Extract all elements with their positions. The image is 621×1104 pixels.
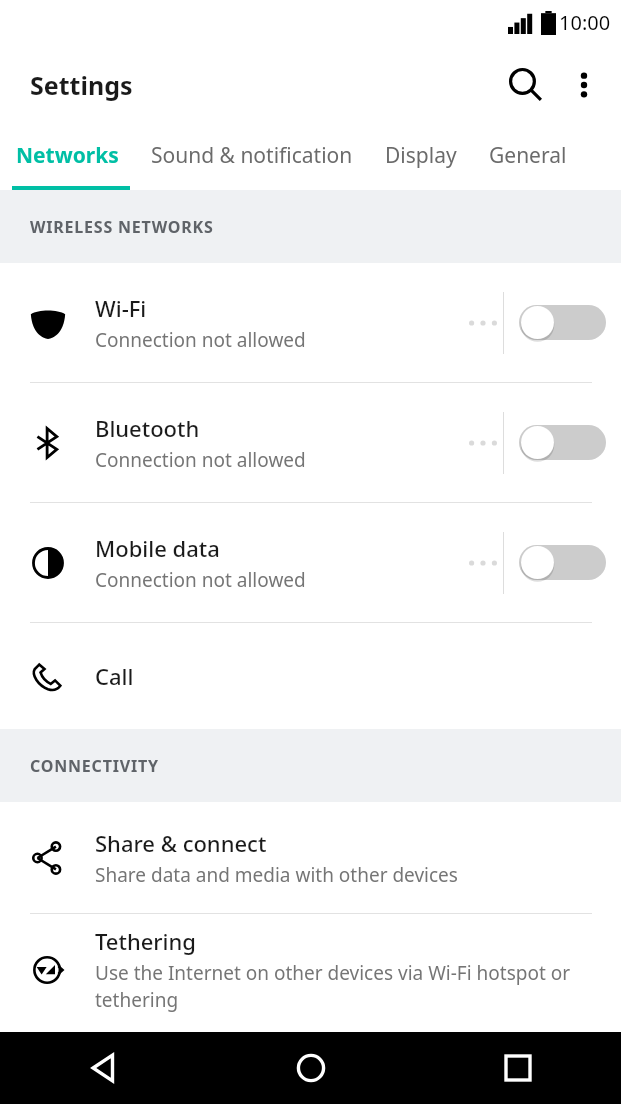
button[interactable]: Tethering <box>0 914 621 1025</box>
button[interactable]: Bluetooth toggle <box>504 383 621 502</box>
button[interactable]: Sound & notification <box>147 135 357 176</box>
staticText: Share data and media with other devices <box>95 862 458 888</box>
button[interactable]: Back <box>0 1032 207 1104</box>
button[interactable]: Wi-Fi <box>0 263 621 382</box>
staticText: Settings <box>30 68 133 102</box>
staticText: Share & connect <box>95 828 267 858</box>
button[interactable]: Call <box>0 623 621 729</box>
staticText: 10:00 <box>559 9 611 36</box>
button[interactable]: Mobile data toggle <box>504 503 621 622</box>
staticText: WIRELESS NETWORKS <box>30 216 214 238</box>
staticText: Mobile data <box>95 533 220 563</box>
button[interactable]: Share & connect <box>0 802 621 913</box>
staticText: Bluetooth <box>95 413 200 443</box>
staticText: Wi-Fi <box>95 293 147 323</box>
staticText: General <box>489 141 567 170</box>
staticText: Use the Internet on other devices via Wi… <box>95 960 601 1013</box>
staticText: Sound & notification <box>151 141 353 170</box>
button[interactable]: Search <box>495 55 555 115</box>
button[interactable]: More options <box>555 56 613 114</box>
staticText: Connection not allowed <box>95 327 306 353</box>
button[interactable]: Wi-Fi toggle <box>504 263 621 382</box>
staticText: Networks <box>16 141 119 170</box>
staticText: Tethering <box>95 926 196 956</box>
button[interactable]: Home <box>207 1032 414 1104</box>
staticText: Display <box>385 141 457 170</box>
button[interactable]: Bluetooth <box>0 383 621 502</box>
button[interactable]: General <box>485 135 571 176</box>
staticText: Connection not allowed <box>95 567 306 593</box>
button[interactable]: Mobile data <box>0 503 621 622</box>
button[interactable]: Display <box>381 135 461 176</box>
staticText: Call <box>95 661 134 691</box>
staticText: CONNECTIVITY <box>30 755 159 777</box>
button[interactable]: Recent apps <box>414 1032 621 1104</box>
button[interactable]: Networks <box>12 135 123 176</box>
staticText: Connection not allowed <box>95 447 306 473</box>
